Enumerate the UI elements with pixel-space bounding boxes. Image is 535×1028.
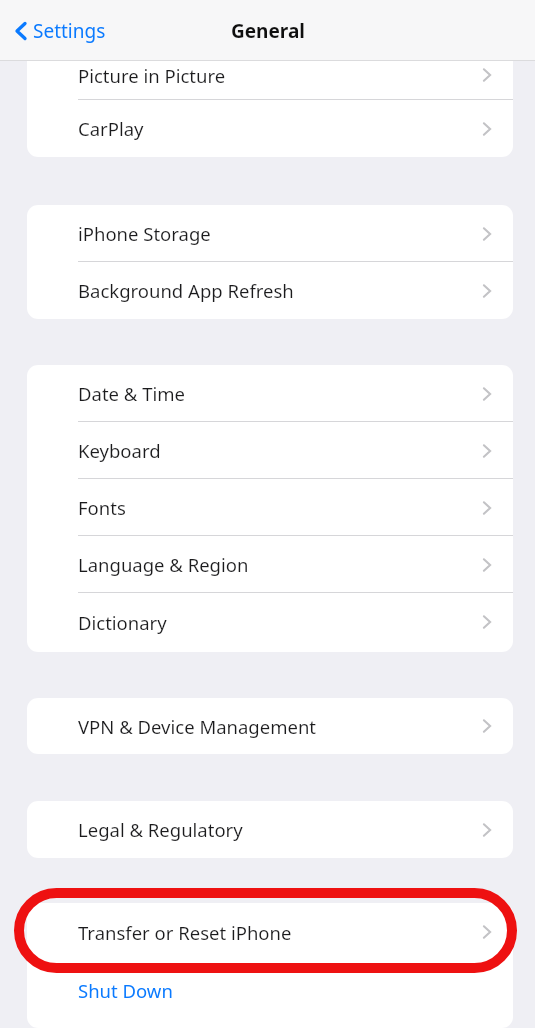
other: Back: [13, 19, 29, 43]
staticText: Keyboard: [78, 438, 161, 463]
staticText: Language & Region: [78, 552, 249, 577]
button[interactable]: Legal & Regulatory: [27, 801, 513, 858]
staticText: Date & Time: [78, 381, 185, 406]
button[interactable]: VPN & Device Management: [27, 698, 513, 754]
staticText: VPN & Device Management: [78, 714, 317, 739]
staticText: Legal & Regulatory: [78, 817, 243, 842]
button[interactable]: CarPlay: [27, 100, 513, 157]
button[interactable]: Dictionary: [27, 593, 513, 651]
staticText: iPhone Storage: [78, 221, 211, 246]
button[interactable]: Date & Time: [27, 365, 513, 422]
button[interactable]: iPhone Storage: [27, 205, 513, 262]
button[interactable]: Fonts: [27, 479, 513, 536]
button[interactable]: Back: [8, 11, 111, 51]
button[interactable]: Picture in Picture: [27, 40, 513, 100]
staticText: Settings: [33, 18, 106, 44]
staticText: Shut Down: [78, 978, 173, 1003]
staticText: Transfer or Reset iPhone: [78, 920, 292, 945]
button[interactable]: Background App Refresh: [27, 262, 513, 319]
staticText: Background App Refresh: [78, 278, 294, 303]
staticText: Dictionary: [78, 610, 167, 635]
staticText: Picture in Picture: [78, 63, 226, 88]
staticText: General: [231, 18, 305, 44]
button[interactable]: Transfer or Reset iPhone: [27, 903, 513, 961]
button[interactable]: Language & Region: [27, 536, 513, 593]
staticText: Fonts: [78, 495, 126, 520]
button[interactable]: Shut Down: [27, 961, 513, 1019]
button[interactable]: Keyboard: [27, 422, 513, 479]
staticText: CarPlay: [78, 116, 144, 141]
